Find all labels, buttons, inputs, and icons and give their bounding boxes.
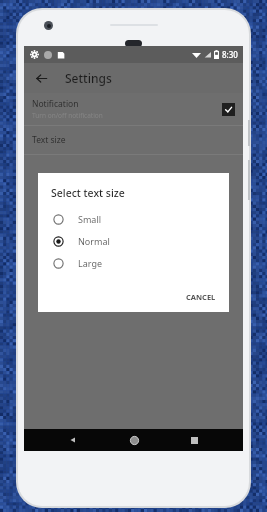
staticText: Select text size [51,186,125,200]
button[interactable]: Home [123,429,145,451]
button[interactable]: Back [62,429,84,451]
button[interactable]: Notification [24,93,243,125]
button[interactable]: Large [38,252,229,274]
staticText: Small [78,213,102,225]
button[interactable]: CANCEL [183,290,219,304]
staticText: CANCEL [186,292,216,302]
staticText: Notification [32,98,79,110]
staticText: Settings [65,70,112,86]
button[interactable]: Normal [38,230,229,252]
button[interactable]: Small [38,208,229,230]
staticText: Large [78,257,103,269]
button[interactable]: Recent apps [183,429,205,451]
staticText: Normal [78,235,110,247]
staticText: Text size [32,134,66,146]
button[interactable]: Text size [24,126,243,154]
staticText: 8:30 [222,49,238,60]
button[interactable]: Back [30,67,52,89]
staticText: Turn on/off notification [32,111,103,120]
